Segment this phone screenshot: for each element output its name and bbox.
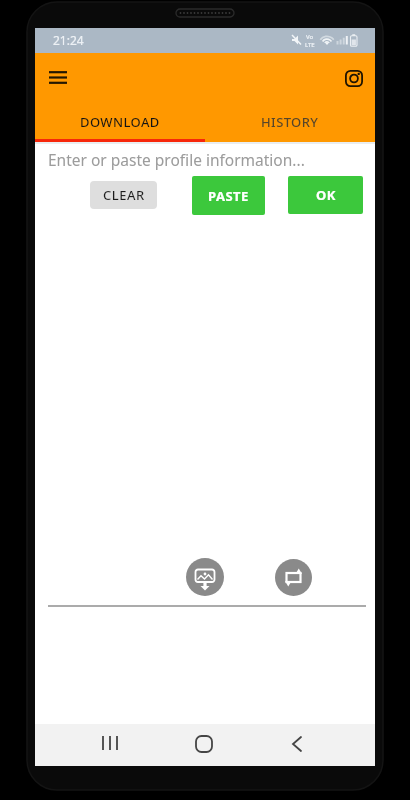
button[interactable] [275,559,312,596]
button[interactable] [184,728,224,762]
staticText: CLEAR [103,186,145,204]
button[interactable] [41,63,75,97]
staticText: 21:24 [53,32,84,48]
button[interactable] [277,728,317,762]
button[interactable] [186,558,224,596]
staticText: LTE [305,41,315,49]
button[interactable]: CLEAR [90,181,157,209]
staticText: OK [316,186,336,204]
button[interactable] [90,728,130,762]
button[interactable]: HISTORY [205,103,375,140]
staticText: Enter or paste profile information... [48,149,305,170]
staticText: Vo [306,33,314,41]
button[interactable] [337,62,371,96]
staticText: PASTE [208,187,249,205]
staticText: HISTORY [261,113,319,131]
button[interactable]: DOWNLOAD [35,103,205,140]
staticText: DOWNLOAD [80,113,160,131]
button[interactable]: OK [288,176,363,214]
button[interactable]: PASTE [192,176,265,215]
button[interactable]: Enter or paste profile information... [43,144,367,174]
